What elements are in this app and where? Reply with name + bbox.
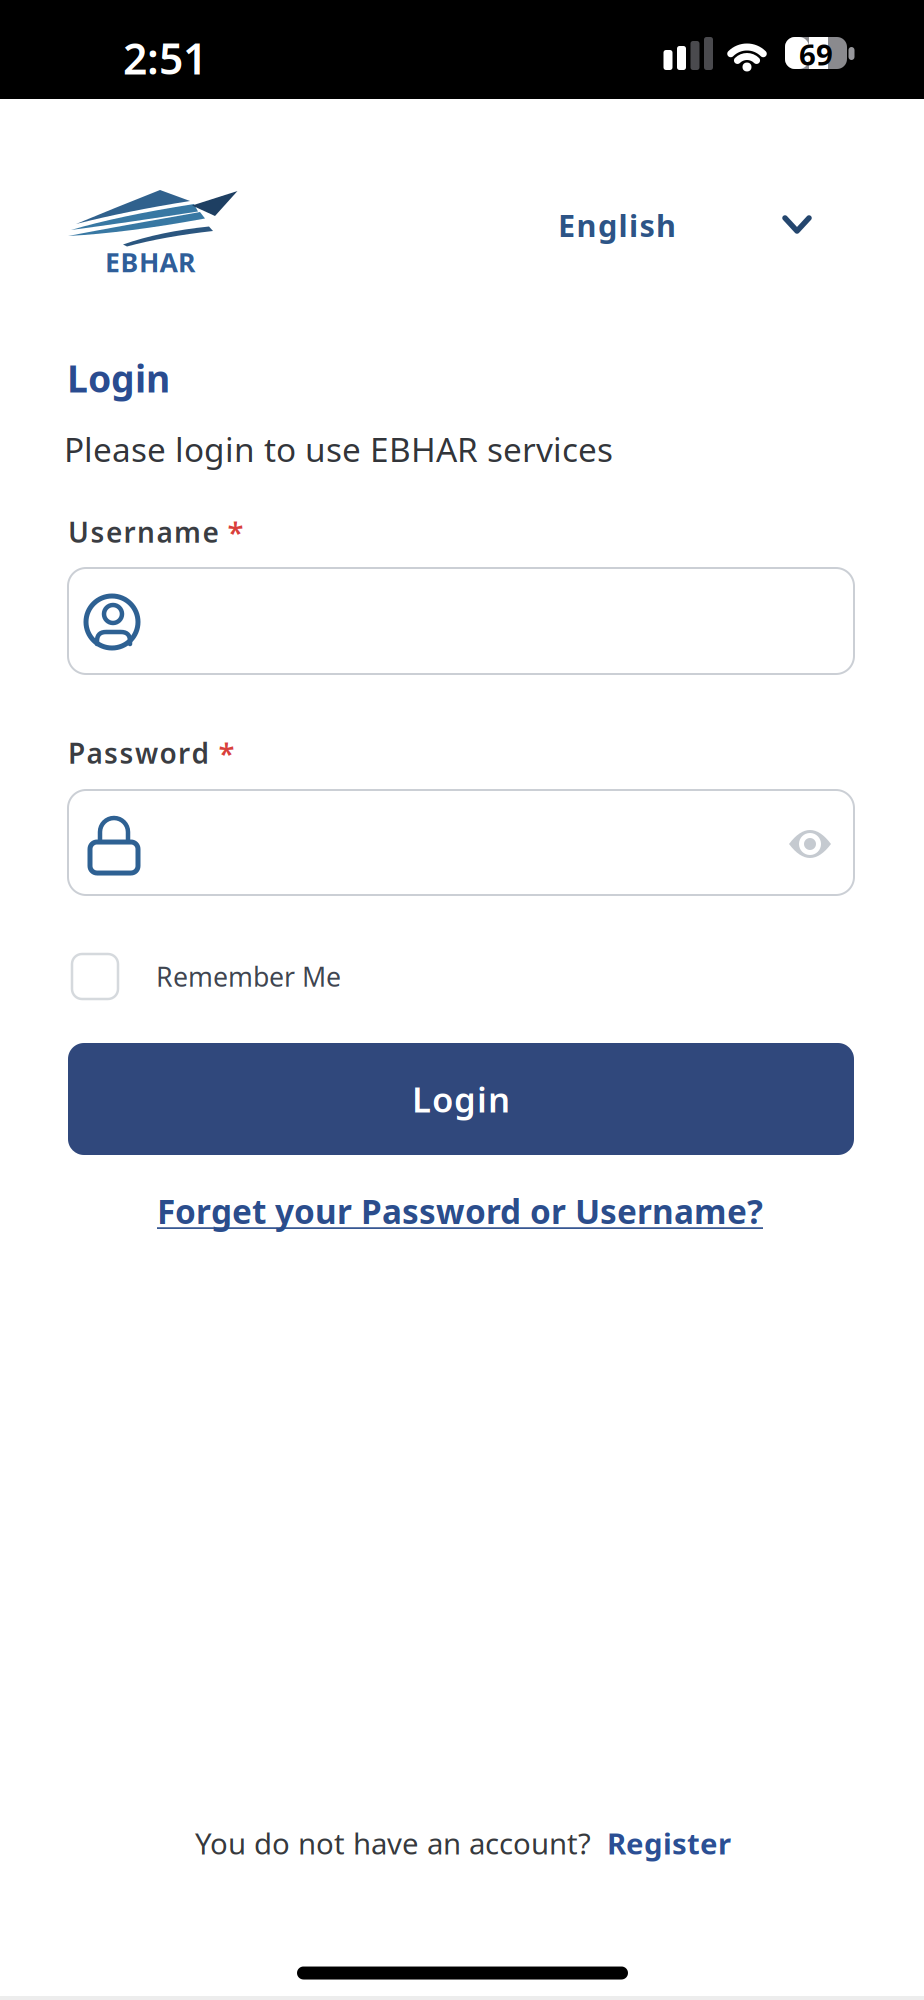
staticText: English xyxy=(558,205,676,245)
button[interactable]: English xyxy=(555,200,815,248)
button[interactable] xyxy=(68,790,854,895)
button[interactable]: Register xyxy=(607,1823,731,1862)
staticText: Username xyxy=(68,513,218,551)
staticText: 69 xyxy=(799,34,833,73)
button[interactable] xyxy=(68,568,854,674)
button[interactable]: Login xyxy=(68,1043,854,1155)
button[interactable]: Remember Me xyxy=(72,951,492,1001)
staticText: * xyxy=(218,733,234,772)
staticText: * xyxy=(227,512,243,551)
staticText: EBHAR xyxy=(105,244,195,280)
staticText: You do not have an account? xyxy=(195,1823,591,1862)
staticText: Remember Me xyxy=(156,959,341,994)
button[interactable] xyxy=(780,819,840,869)
button[interactable]: Forget your Password or Username? xyxy=(157,1189,763,1233)
staticText: Register xyxy=(607,1823,731,1862)
staticText: Please login to use EBHAR services xyxy=(64,427,613,471)
staticText: Forget your Password or Username? xyxy=(157,1189,763,1233)
staticText: 2:51 xyxy=(123,30,207,86)
staticText: Login xyxy=(412,1076,510,1122)
staticText: Login xyxy=(67,353,170,403)
staticText: Password xyxy=(68,734,209,772)
